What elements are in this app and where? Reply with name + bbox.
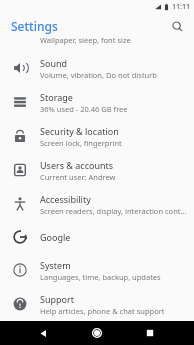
button[interactable]: Back bbox=[33, 323, 53, 343]
staticText: Users & accounts bbox=[40, 159, 114, 171]
button[interactable]: Home bbox=[87, 323, 107, 343]
staticText: Screen lock, fingerprint bbox=[40, 138, 122, 148]
staticText: Accessibility bbox=[40, 193, 91, 205]
staticText: Volume, vibration, Do not disturb bbox=[40, 70, 157, 80]
button[interactable]: Google bbox=[0, 221, 194, 253]
staticText: 11:11 bbox=[172, 2, 190, 12]
staticText: Current user: Andrew bbox=[40, 172, 116, 182]
staticText: Sound bbox=[40, 57, 68, 69]
staticText: 36% used - 20.46 GB free bbox=[40, 104, 128, 114]
button[interactable]: Support bbox=[0, 287, 194, 321]
button[interactable]: Wallpaper, sleep, font size bbox=[0, 38, 194, 51]
button[interactable]: Users & accounts bbox=[0, 153, 194, 187]
staticText: Settings bbox=[11, 18, 58, 34]
staticText: Wallpaper, sleep, font size bbox=[40, 35, 131, 45]
button[interactable]: Storage bbox=[0, 85, 194, 119]
staticText: Languages, time, backup, updates bbox=[40, 272, 161, 282]
button[interactable]: Accessibility bbox=[0, 187, 194, 221]
staticText: Help articles, phone & chat support bbox=[40, 306, 165, 316]
button[interactable]: System bbox=[0, 253, 194, 287]
staticText: Storage bbox=[40, 91, 73, 103]
button[interactable]: Search bbox=[166, 15, 188, 37]
staticText: Screen readers, display, interaction con… bbox=[40, 206, 188, 216]
staticText: Google bbox=[40, 231, 71, 243]
staticText: System bbox=[40, 259, 71, 271]
button[interactable]: Security & location bbox=[0, 119, 194, 153]
staticText: Support bbox=[40, 293, 74, 305]
staticText: Security & location bbox=[40, 125, 119, 137]
button[interactable]: Sound bbox=[0, 51, 194, 85]
button[interactable]: Recent apps bbox=[140, 323, 160, 343]
